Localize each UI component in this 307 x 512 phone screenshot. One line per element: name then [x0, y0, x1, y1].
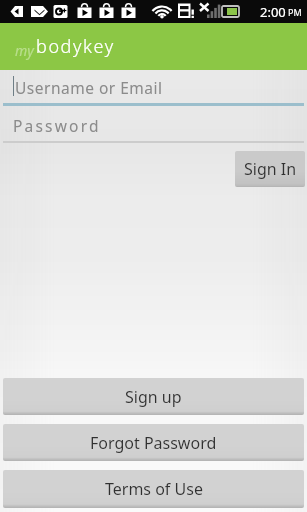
- staticText: my: [15, 41, 34, 60]
- staticText: PM: [288, 6, 302, 18]
- staticText: Password: [13, 115, 101, 136]
- staticText: 2:00: [260, 3, 286, 21]
- button[interactable]: Forgot Password: [3, 424, 304, 461]
- button[interactable]: Sign up: [3, 378, 304, 415]
- staticText: Sign up: [125, 386, 182, 408]
- button[interactable]: Terms of Use: [3, 470, 304, 508]
- staticText: Username or Email: [15, 77, 163, 98]
- button[interactable]: Sign In: [235, 151, 305, 187]
- staticText: Forgot Password: [90, 432, 217, 454]
- staticText: Terms of Use: [105, 478, 203, 500]
- staticText: bodykey: [36, 34, 115, 59]
- staticText: Sign In: [244, 158, 297, 180]
